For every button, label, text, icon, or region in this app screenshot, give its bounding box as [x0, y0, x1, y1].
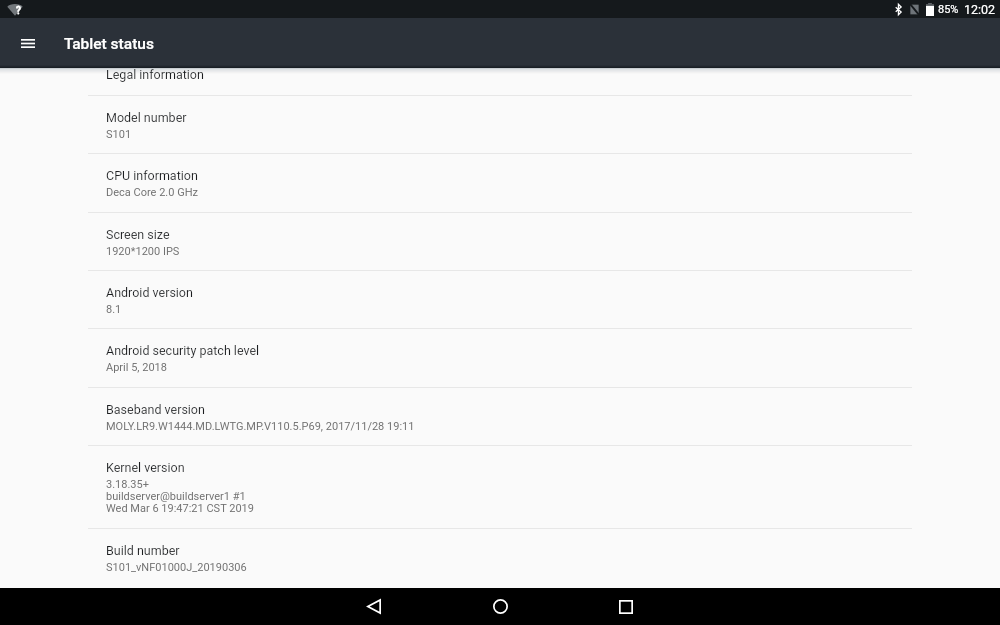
staticText: S101_vNF01000J_20190306 — [106, 561, 247, 574]
button[interactable]: Baseband version — [0, 388, 1000, 445]
staticText: Legal information — [106, 67, 204, 82]
staticText: Deca Core 2.0 GHz — [106, 186, 198, 199]
staticText: Model number — [106, 110, 187, 125]
button[interactable]: CPU information — [0, 154, 1000, 212]
staticText: S101 — [106, 128, 132, 141]
button[interactable]: Recent apps — [604, 588, 648, 625]
button[interactable]: Legal information — [0, 68, 1000, 95]
staticText: Screen size — [106, 227, 170, 242]
staticText: ? — [16, 5, 21, 17]
staticText: 1920*1200 IPS — [106, 245, 180, 258]
staticText: April 5, 2018 — [106, 361, 167, 374]
staticText: Kernel version — [106, 460, 185, 475]
button[interactable]: Home — [478, 588, 522, 625]
staticText: MOLY.LR9.W1444.MD.LWTG.MP.V110.5.P69, 20… — [106, 420, 415, 433]
staticText: 8.1 — [106, 303, 122, 316]
button[interactable]: Android version — [0, 271, 1000, 329]
staticText: Android version — [106, 285, 193, 300]
staticText: 3.18.35+ buildserver@buildserver1 #1 Wed… — [106, 478, 254, 515]
button[interactable]: Build number — [0, 529, 1000, 589]
staticText: Tablet status — [64, 35, 154, 53]
button[interactable]: Back — [352, 588, 396, 625]
staticText: Android security patch level — [106, 343, 260, 358]
staticText: CPU information — [106, 168, 198, 183]
staticText: Baseband version — [106, 402, 205, 417]
staticText: Build number — [106, 543, 180, 558]
other: Wi-Fi not connected — [7, 3, 23, 16]
button[interactable]: Model number — [0, 96, 1000, 154]
staticText: 12:02 — [964, 2, 996, 17]
button[interactable]: Screen size — [0, 213, 1000, 270]
staticText: 85% — [938, 3, 959, 16]
button[interactable]: Open navigation menu — [0, 18, 56, 68]
button[interactable]: Android security patch level — [0, 329, 1000, 387]
button[interactable]: Kernel version — [0, 446, 1000, 528]
